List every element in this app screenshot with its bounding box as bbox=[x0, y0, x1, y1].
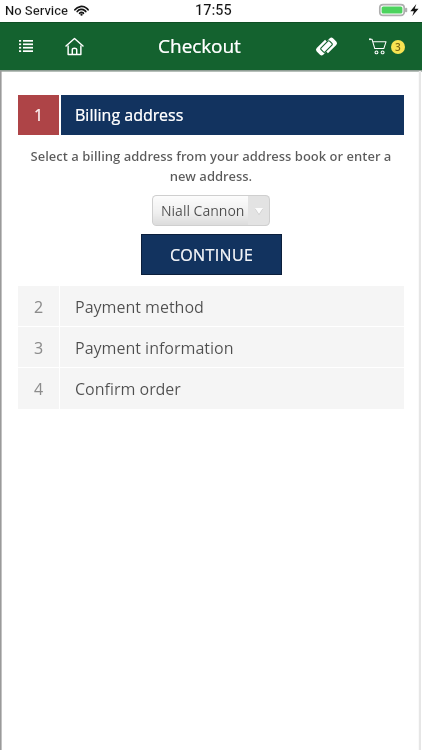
button[interactable]: Menu bbox=[0, 22, 52, 70]
staticText: 4 bbox=[34, 378, 44, 400]
staticText: 2 bbox=[34, 296, 44, 318]
button[interactable]: Niall Cannon bbox=[153, 196, 269, 225]
button[interactable]: CONTINUE bbox=[142, 235, 281, 274]
button[interactable]: 3 bbox=[18, 327, 404, 368]
staticText: Payment method bbox=[75, 296, 204, 318]
button[interactable]: Offers bbox=[300, 22, 352, 70]
button[interactable]: 4 bbox=[18, 368, 404, 409]
staticText: Confirm order bbox=[75, 378, 181, 400]
button[interactable]: 2 bbox=[18, 286, 404, 327]
staticText: Checkout bbox=[158, 33, 241, 59]
staticText: 1 bbox=[34, 104, 44, 126]
button[interactable]: Cart, 3 items bbox=[362, 22, 422, 70]
staticText: No Service bbox=[5, 3, 68, 18]
staticText: 3 bbox=[34, 337, 44, 359]
button[interactable]: 1 bbox=[18, 95, 404, 135]
staticText: 3 bbox=[395, 40, 401, 54]
staticText: Select a billing address from your addre… bbox=[28, 147, 394, 185]
staticText: Billing address bbox=[75, 104, 184, 126]
button[interactable]: Home bbox=[48, 22, 100, 70]
staticText: Niall Cannon bbox=[161, 201, 245, 220]
staticText: 17:55 bbox=[195, 2, 232, 19]
staticText: CONTINUE bbox=[170, 244, 254, 266]
staticText: Payment information bbox=[75, 337, 234, 359]
